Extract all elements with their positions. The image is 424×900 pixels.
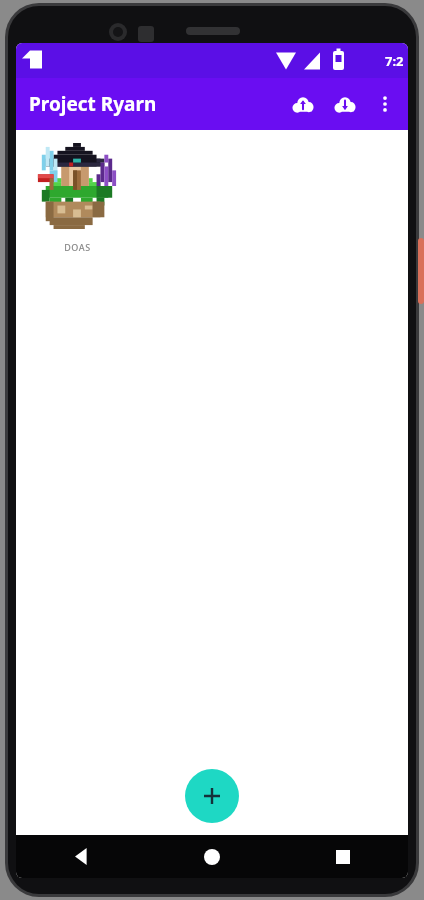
staticText: Project Ryarn xyxy=(29,91,157,117)
button[interactable]: Recent apps xyxy=(277,835,408,878)
button[interactable]: More options xyxy=(366,85,404,123)
button[interactable]: Upload to cloud xyxy=(282,83,324,125)
staticText: DOAS xyxy=(64,241,91,253)
button[interactable]: DOAS xyxy=(34,141,120,255)
staticText: 7:2 xyxy=(385,52,404,70)
button[interactable]: Back xyxy=(16,835,146,878)
button[interactable]: Download from cloud xyxy=(324,83,366,125)
button[interactable]: Home xyxy=(146,835,277,878)
button[interactable]: Add xyxy=(185,769,239,823)
